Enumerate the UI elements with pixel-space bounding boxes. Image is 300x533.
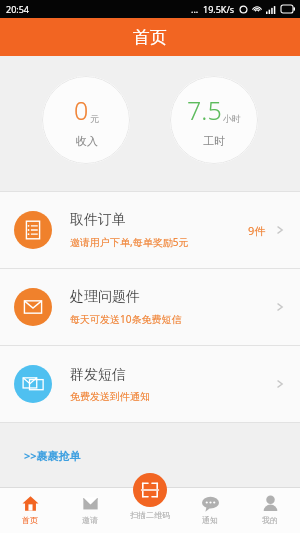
staticText: 7.5 [187,93,222,127]
staticText: 我的 [262,515,278,525]
button[interactable]: >>裹裹抢单 [24,446,81,465]
staticText: 9件 [248,223,266,238]
staticText: 处理问题件 [70,288,140,306]
staticText: 元 [90,113,99,124]
button[interactable]: 0 [42,76,130,164]
button[interactable]: 邀请 [60,487,120,533]
button[interactable]: 我的 [240,487,300,533]
staticText: 首页 [133,27,167,48]
staticText: 20:54 [6,3,30,15]
staticText: 通知 [202,515,218,525]
staticText: 19.5K/s [203,3,235,15]
staticText: 取件订单 [70,211,126,229]
staticText: 首页 [22,515,38,525]
button[interactable]: 处理问题件 [0,269,300,345]
button[interactable]: 通知 [180,487,240,533]
staticText: 收入 [76,134,98,148]
staticText: 群发短信 [70,366,126,384]
staticText: 小时 [223,113,241,124]
staticText: 邀请 [82,515,98,525]
staticText: 工时 [203,134,225,148]
staticText: ... [191,3,199,15]
staticText: 每天可发送10条免费短信 [70,312,182,326]
button[interactable]: 取件订单 [0,192,300,268]
staticText: 扫描二维码 [130,510,170,519]
button[interactable]: 7.5 [170,76,258,164]
button[interactable]: 扫描二维码 [130,473,170,519]
staticText: 免费发送到件通知 [70,390,150,403]
button[interactable]: 首页 [0,487,60,533]
staticText: 0 [74,93,89,127]
button[interactable]: 群发短信 [0,346,300,422]
staticText: 邀请用户下单,每单奖励5元 [70,235,189,249]
